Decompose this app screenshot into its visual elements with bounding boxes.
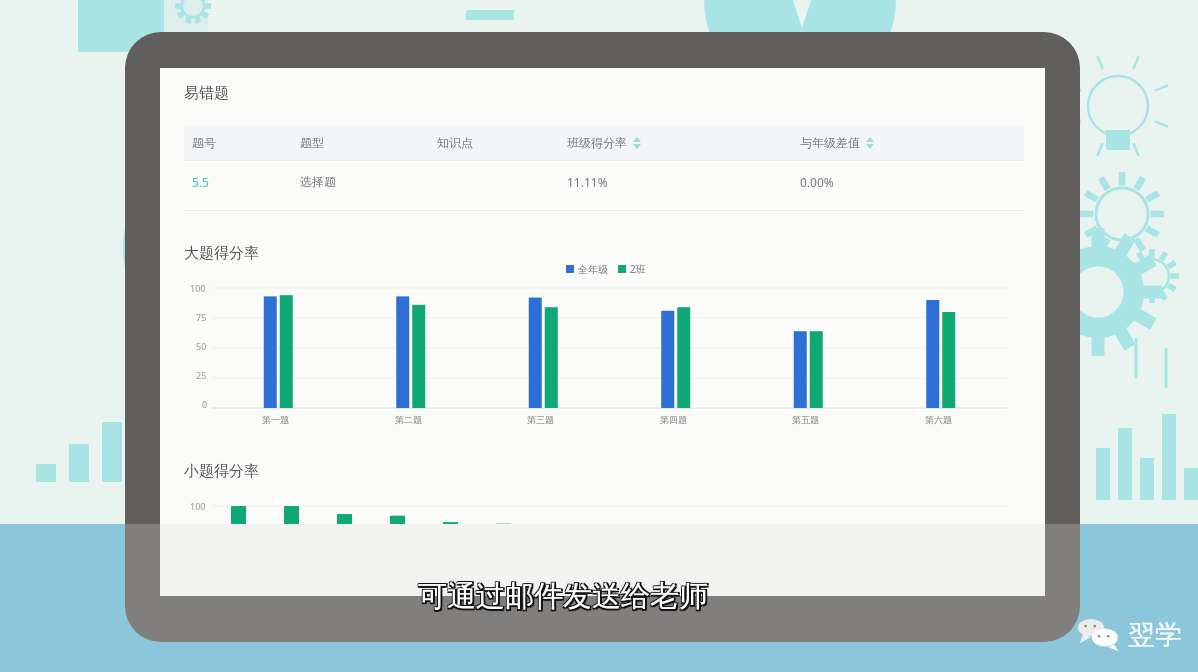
staticText: 第三题 [527, 414, 554, 425]
staticText: 2班 [630, 262, 646, 276]
staticText: 可通过邮件发送给老师 [417, 580, 707, 617]
staticText: 可通过邮件发送给老师 [418, 577, 708, 614]
button[interactable]: 全年级 [566, 262, 646, 276]
staticText: 可通过邮件发送给老师 [420, 578, 710, 615]
staticText: 第五题 [792, 414, 819, 425]
staticText: 第六题 [925, 414, 952, 425]
staticText: 易错题 [184, 84, 229, 103]
staticText: 翌学 [1128, 618, 1182, 652]
staticText: 0 [202, 398, 208, 410]
staticText: 可通过邮件发送给老师 [418, 578, 708, 615]
staticText: 选择题 [300, 174, 336, 189]
staticText: 第二题 [395, 414, 422, 425]
staticText: 题型 [300, 135, 324, 150]
staticText: 可通过邮件发送给老师 [417, 578, 707, 615]
staticText: 大题得分率 [184, 244, 259, 263]
staticText: 与年级差值 [800, 135, 860, 150]
staticText: 题号 [192, 135, 216, 150]
staticText: 75 [196, 311, 207, 323]
staticText: 班级得分率 [567, 135, 627, 150]
button[interactable]: 与年级差值 [800, 135, 874, 150]
staticText: 可通过邮件发送给老师 [417, 577, 707, 614]
staticText: 可通过邮件发送给老师 [420, 577, 710, 614]
button[interactable]: 知识点 [437, 135, 473, 150]
staticText: 100 [190, 500, 206, 512]
staticText: 小题得分率 [184, 462, 259, 481]
staticText: 第一题 [262, 414, 289, 425]
button[interactable]: WeChat 翌学 [1078, 618, 1182, 652]
button[interactable]: 题号 [192, 135, 216, 150]
button[interactable]: 题型 [300, 135, 324, 150]
staticText: 可通过邮件发送给老师 [418, 580, 708, 617]
button[interactable]: 5.5 [192, 174, 209, 190]
staticText: 全年级 [578, 263, 608, 276]
staticText: 第四题 [660, 414, 687, 425]
staticText: 知识点 [437, 135, 473, 150]
staticText: 0.00% [800, 174, 834, 190]
button[interactable]: 班级得分率 [567, 135, 641, 150]
staticText: 11.11% [567, 174, 608, 190]
staticText: 100 [190, 282, 206, 294]
staticText: 可通过邮件发送给老师 [420, 580, 710, 617]
staticText: 50 [196, 340, 207, 352]
staticText: 25 [196, 369, 207, 381]
